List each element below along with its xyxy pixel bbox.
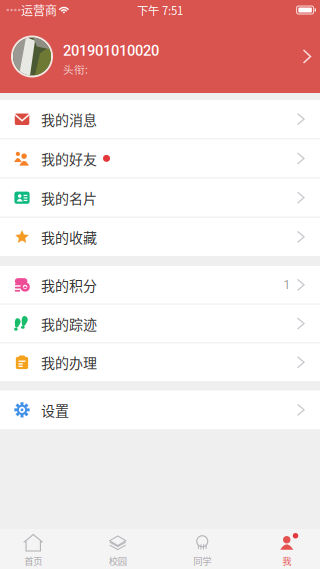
staticText: 运营商 <box>21 1 57 19</box>
button[interactable]: 我的名片 <box>0 178 320 217</box>
staticText: 设置 <box>41 400 69 420</box>
staticText: 我的名片 <box>41 187 97 208</box>
button[interactable]: 同学 <box>180 529 224 569</box>
button[interactable]: 我的积分 <box>0 266 320 304</box>
staticText: 头衔: <box>63 61 88 77</box>
staticText: 我的积分 <box>41 275 97 295</box>
staticText: 我的办理 <box>41 352 97 372</box>
staticText: 首页 <box>24 554 42 567</box>
staticText: 我的消息 <box>41 109 97 129</box>
staticText: 我 <box>282 554 291 567</box>
button[interactable]: 我的好友 <box>0 139 320 177</box>
button[interactable]: 我的消息 <box>0 100 320 138</box>
staticText: 下午 7:51 <box>137 2 183 18</box>
staticText: 1 <box>283 278 290 292</box>
button[interactable]: 我的收藏 <box>0 218 320 256</box>
button[interactable]: 校园 <box>96 529 140 569</box>
staticText: 我的好友 <box>41 148 97 168</box>
button[interactable]: 我 <box>265 529 309 569</box>
button[interactable]: 设置 <box>0 391 320 429</box>
button[interactable]: 我的办理 <box>0 343 320 381</box>
staticText: 201901010020 <box>63 42 159 59</box>
button[interactable]: 我的踪迹 <box>0 305 320 342</box>
button[interactable]: 首页 <box>11 529 55 569</box>
button[interactable]: 201901010020 <box>0 20 320 93</box>
staticText: 我的踪迹 <box>41 313 97 334</box>
staticText: 我的收藏 <box>41 227 97 247</box>
staticText: 校园 <box>109 554 127 567</box>
staticText: 同学 <box>193 554 211 567</box>
